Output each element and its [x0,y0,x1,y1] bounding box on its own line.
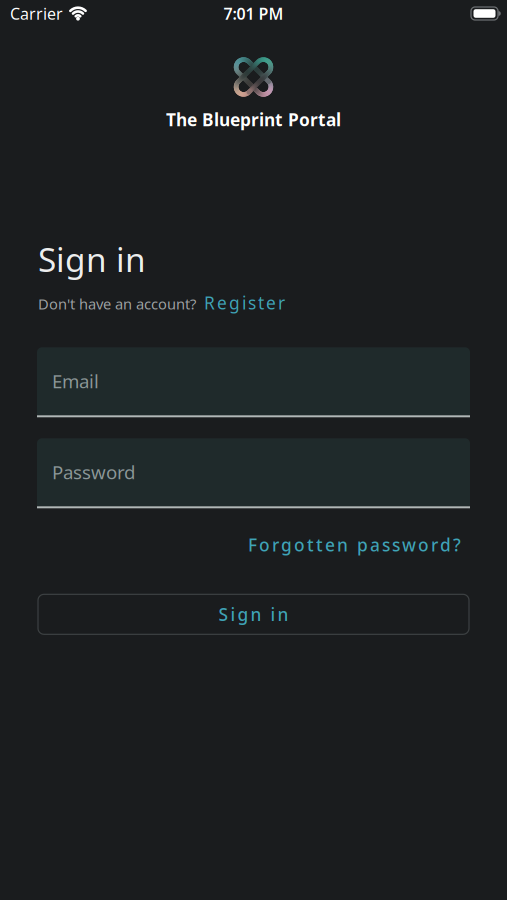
staticText: Password [52,459,135,484]
staticText: S i g n i n [218,603,288,626]
staticText: F o r g o t t e n p a s s w o r d ? [248,533,461,556]
staticText: Don't have an account? [38,294,196,314]
staticText: The Blueprint Portal [166,108,341,131]
staticText: 7:01 PM [223,3,283,24]
staticText: Carrier [10,3,63,24]
button[interactable]: F o r g o t t e n p a s s w o r d ? [248,533,461,556]
staticText: Email [52,368,99,393]
staticText: R e g i s t e r [204,291,285,314]
button[interactable]: Password [37,438,470,508]
button[interactable]: R e g i s t e r [204,291,285,314]
button[interactable]: S i g n i n [38,594,469,634]
staticText: Sign in [38,237,146,281]
button[interactable]: Email [37,347,470,417]
